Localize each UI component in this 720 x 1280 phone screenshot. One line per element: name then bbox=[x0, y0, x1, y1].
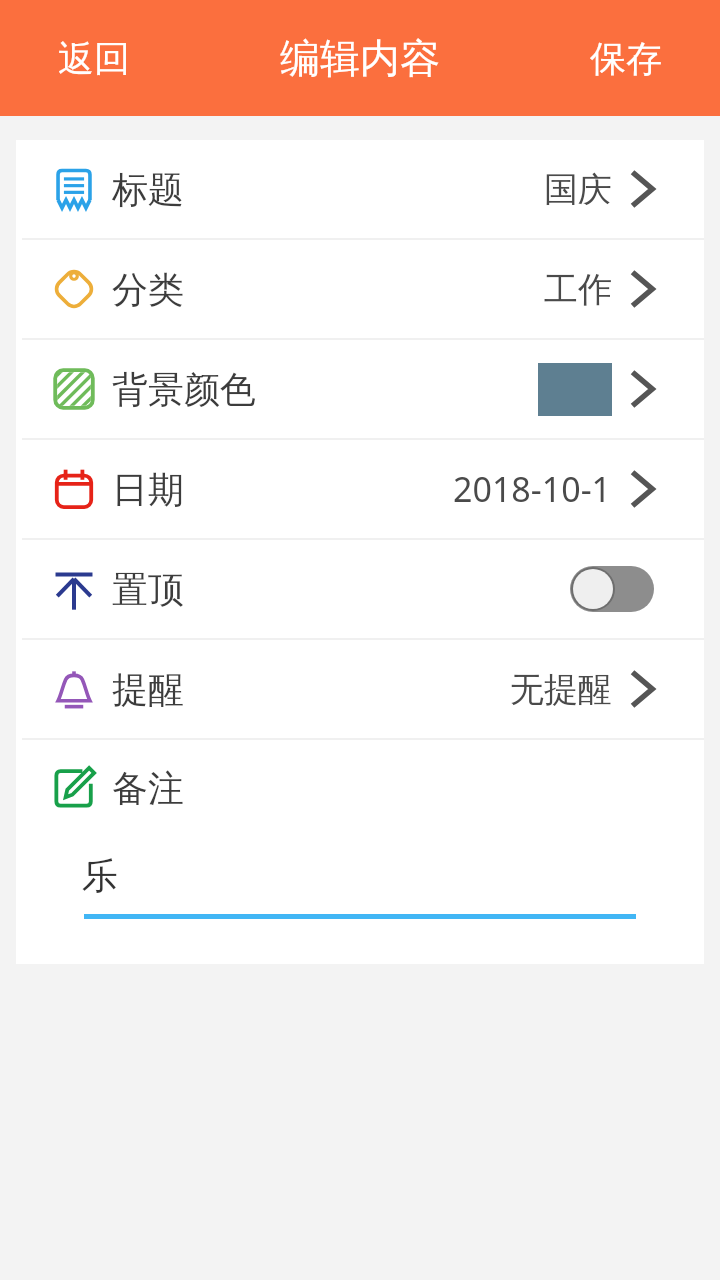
button[interactable]: 备注 bbox=[16, 740, 704, 964]
staticText: 工作 bbox=[544, 268, 612, 311]
staticText: 日期 bbox=[112, 467, 184, 512]
staticText: 背景颜色 bbox=[112, 367, 256, 412]
staticText: 分类 bbox=[112, 267, 184, 312]
staticText: 编辑内容 bbox=[280, 33, 440, 83]
button[interactable]: 提醒 bbox=[16, 640, 704, 738]
button[interactable]: 分类 bbox=[16, 240, 704, 338]
staticText: 国庆 bbox=[544, 168, 612, 211]
button[interactable]: 置顶开关 bbox=[570, 566, 654, 612]
button[interactable]: 日期 bbox=[16, 440, 704, 538]
button[interactable]: 置顶 bbox=[16, 540, 704, 638]
staticText: 2018-10-1 bbox=[453, 466, 612, 512]
staticText: 无提醒 bbox=[510, 668, 612, 711]
button[interactable]: 保存 bbox=[572, 26, 680, 91]
staticText: 保存 bbox=[590, 36, 662, 81]
button[interactable]: 返回 bbox=[40, 26, 148, 91]
button[interactable]: 背景颜色 bbox=[16, 340, 704, 438]
staticText: 返回 bbox=[58, 36, 130, 81]
staticText: 标题 bbox=[112, 167, 184, 212]
button[interactable]: 标题 bbox=[16, 140, 704, 238]
staticText: 置顶 bbox=[112, 567, 184, 612]
staticText: 乐 bbox=[82, 853, 118, 898]
staticText: 提醒 bbox=[112, 667, 184, 712]
staticText: 备注 bbox=[112, 766, 184, 811]
